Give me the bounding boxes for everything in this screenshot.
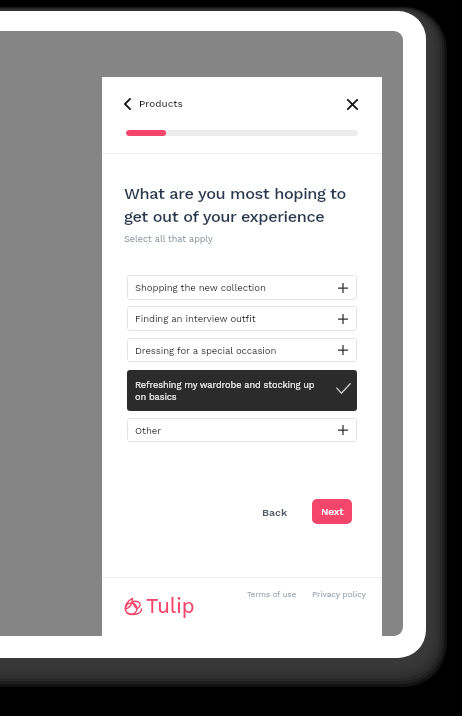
button[interactable]: Dressing for a special occasion bbox=[127, 338, 357, 362]
button[interactable]: Close bbox=[341, 93, 364, 116]
button[interactable]: Finding an interview outfit bbox=[127, 306, 357, 331]
staticText: Dressing for a special occasion bbox=[135, 345, 277, 356]
button[interactable]: Terms of use bbox=[247, 590, 297, 599]
button[interactable]: Products bbox=[124, 96, 183, 112]
button[interactable]: Shopping the new collection bbox=[127, 275, 357, 300]
button[interactable]: Back bbox=[257, 500, 293, 523]
staticText: What are you most hoping to get out of y… bbox=[124, 184, 347, 226]
button[interactable]: Other bbox=[127, 418, 357, 442]
button[interactable]: Refreshing my wardrobe and stocking up o… bbox=[127, 370, 357, 411]
staticText: Tulip bbox=[146, 594, 195, 618]
staticText: Terms of use bbox=[247, 590, 297, 599]
staticText: Other bbox=[135, 425, 162, 436]
staticText: Products bbox=[139, 98, 183, 110]
button[interactable]: Privacy policy bbox=[312, 589, 366, 599]
staticText: Back bbox=[262, 506, 288, 518]
staticText: Shopping the new collection bbox=[135, 282, 266, 293]
staticText: Select all that apply bbox=[124, 234, 213, 245]
staticText: Next bbox=[321, 506, 344, 518]
staticText: Privacy policy bbox=[312, 589, 366, 599]
button[interactable]: Tulip bbox=[123, 594, 195, 618]
staticText: Finding an interview outfit bbox=[135, 313, 256, 324]
button[interactable]: Next bbox=[312, 499, 352, 524]
staticText: Refreshing my wardrobe and stocking up o… bbox=[135, 379, 315, 402]
